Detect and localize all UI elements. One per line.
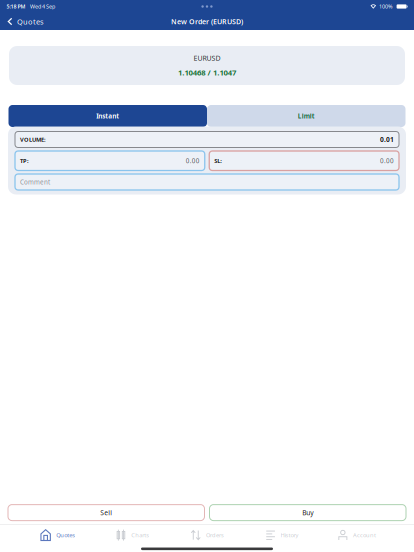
staticText: Quotes bbox=[17, 16, 44, 27]
button[interactable]: Account bbox=[319, 525, 394, 546]
button[interactable]: Quotes bbox=[2, 13, 48, 30]
staticText: Quotes bbox=[56, 531, 75, 539]
staticText: 100% bbox=[379, 3, 393, 10]
staticText: EURUSD bbox=[193, 53, 220, 63]
button[interactable]: Charts bbox=[95, 525, 170, 546]
staticText: VOLUME: bbox=[20, 136, 46, 143]
staticText: Buy bbox=[302, 508, 313, 517]
button[interactable]: History bbox=[244, 525, 319, 546]
button[interactable]: Quotes bbox=[20, 525, 95, 546]
staticText: Account bbox=[353, 531, 376, 539]
staticText: 0.00 bbox=[380, 156, 394, 165]
staticText: 0.00 bbox=[186, 156, 200, 165]
button[interactable]: Instant bbox=[8, 105, 207, 127]
button[interactable]: Buy bbox=[209, 505, 406, 521]
staticText: History bbox=[280, 531, 298, 539]
staticText: New Order (EURUSD) bbox=[171, 17, 243, 26]
button[interactable]: Orders bbox=[170, 525, 244, 546]
staticText: Limit bbox=[298, 112, 315, 120]
staticText: 0.01 bbox=[380, 135, 394, 144]
staticText: TP: bbox=[20, 157, 29, 165]
staticText: Wed 4 Sep bbox=[30, 3, 55, 10]
staticText: Orders bbox=[206, 531, 224, 539]
staticText: Sell bbox=[100, 508, 112, 517]
button[interactable]: Sell bbox=[8, 505, 204, 521]
staticText: Instant bbox=[96, 112, 119, 120]
staticText: 5:18 PM bbox=[6, 3, 25, 10]
button[interactable]: Limit bbox=[207, 105, 405, 127]
staticText: Comment bbox=[20, 178, 50, 186]
staticText: SL: bbox=[214, 157, 222, 165]
staticText: Charts bbox=[131, 531, 149, 539]
staticText: 1.10468 / 1.1047 bbox=[178, 67, 236, 78]
